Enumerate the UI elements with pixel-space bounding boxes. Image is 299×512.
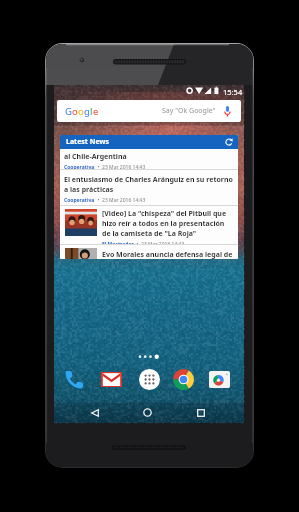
staticText: o — [72, 105, 78, 118]
staticText: • 23 Mar 2016 14:43 — [134, 241, 185, 244]
button[interactable]: [Video] La "chispeza" del Pitbull que hi… — [60, 206, 238, 244]
button[interactable]: Home — [133, 402, 161, 423]
staticText: El Mostrador — [102, 241, 134, 244]
staticText: Cooperativa — [64, 164, 95, 169]
button[interactable]: G — [57, 100, 241, 122]
button[interactable]: Camera — [207, 367, 231, 391]
staticText: [Video] La "chispeza" del Pitbull que hi… — [102, 209, 234, 239]
staticText: g — [84, 105, 90, 118]
other: Voice search — [224, 106, 231, 117]
staticText: G — [65, 105, 72, 118]
other: Refresh — [225, 138, 233, 146]
button[interactable]: Recents — [187, 402, 215, 423]
button[interactable]: Apps — [137, 367, 161, 391]
staticText: Latest News — [66, 137, 109, 147]
staticText: al Chile-Argentina — [64, 152, 127, 162]
button[interactable]: Evo Morales anuncia defensa legal de — [60, 245, 238, 259]
button[interactable]: al Chile-Argentina — [60, 149, 238, 169]
staticText: • 23 Mar 2016 14:43 — [95, 197, 146, 204]
button[interactable]: Chrome — [171, 367, 195, 391]
staticText: El entusiasmo de Charles Aránguiz en su … — [64, 175, 234, 195]
button[interactable]: Latest News — [66, 135, 233, 149]
button[interactable]: Phone — [62, 367, 86, 391]
staticText: o — [78, 105, 84, 118]
staticText: 15:54 — [223, 87, 243, 97]
staticText: Evo Morales anuncia defensa legal de — [102, 250, 233, 259]
staticText: e — [93, 105, 99, 118]
staticText: Say "Ok Google" — [162, 106, 216, 116]
staticText: • 23 Mar 2016 14:43 — [95, 164, 146, 169]
button[interactable]: Gmail — [99, 367, 123, 391]
staticText: Cooperativa — [64, 197, 95, 204]
button[interactable]: Back — [81, 402, 109, 423]
button[interactable]: El entusiasmo de Charles Aránguiz en su … — [60, 170, 238, 205]
staticText: l — [90, 105, 93, 118]
